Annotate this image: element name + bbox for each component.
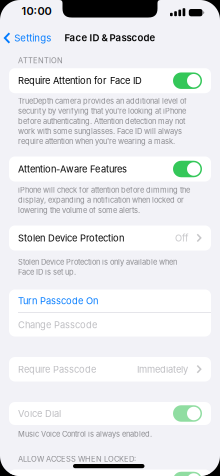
- button[interactable]: Attention-Aware Features: [173, 161, 202, 177]
- button[interactable]: Today View and Search: [173, 472, 202, 476]
- staticText: TrueDepth camera provides an additional …: [18, 96, 187, 146]
- button[interactable]: Require Attention for Face ID: [173, 72, 202, 89]
- staticText: Change Passcode: [18, 319, 97, 330]
- staticText: Stolen Device Protection is only availab…: [18, 257, 177, 277]
- staticText: Require Attention for Face ID: [18, 75, 142, 86]
- staticText: Stolen Device Protection: [18, 232, 124, 244]
- staticText: 10:00: [21, 4, 51, 18]
- staticText: Face ID & Passcode: [64, 32, 155, 44]
- staticText: Voice Dial: [18, 408, 61, 419]
- button[interactable]: Turn Passcode On: [9, 289, 211, 312]
- staticText: Require Passcode: [18, 364, 96, 375]
- staticText: Settings: [14, 32, 51, 44]
- staticText: Attention-Aware Features: [18, 163, 127, 175]
- staticText: Music Voice Control is always enabled.: [18, 429, 152, 439]
- staticText: iPhone will check for attention before d…: [18, 185, 190, 215]
- button[interactable]: Voice Dial: [173, 405, 202, 422]
- staticText: ALLOW ACCESS WHEN LOCKED:: [18, 454, 136, 464]
- staticText: Immediately: [137, 364, 188, 375]
- staticText: Off: [175, 232, 188, 244]
- staticText: ATTENTION: [18, 56, 63, 65]
- button[interactable]: Stolen Device Protection: [9, 225, 211, 250]
- staticText: Turn Passcode On: [18, 295, 98, 306]
- button[interactable]: Settings: [0, 29, 51, 47]
